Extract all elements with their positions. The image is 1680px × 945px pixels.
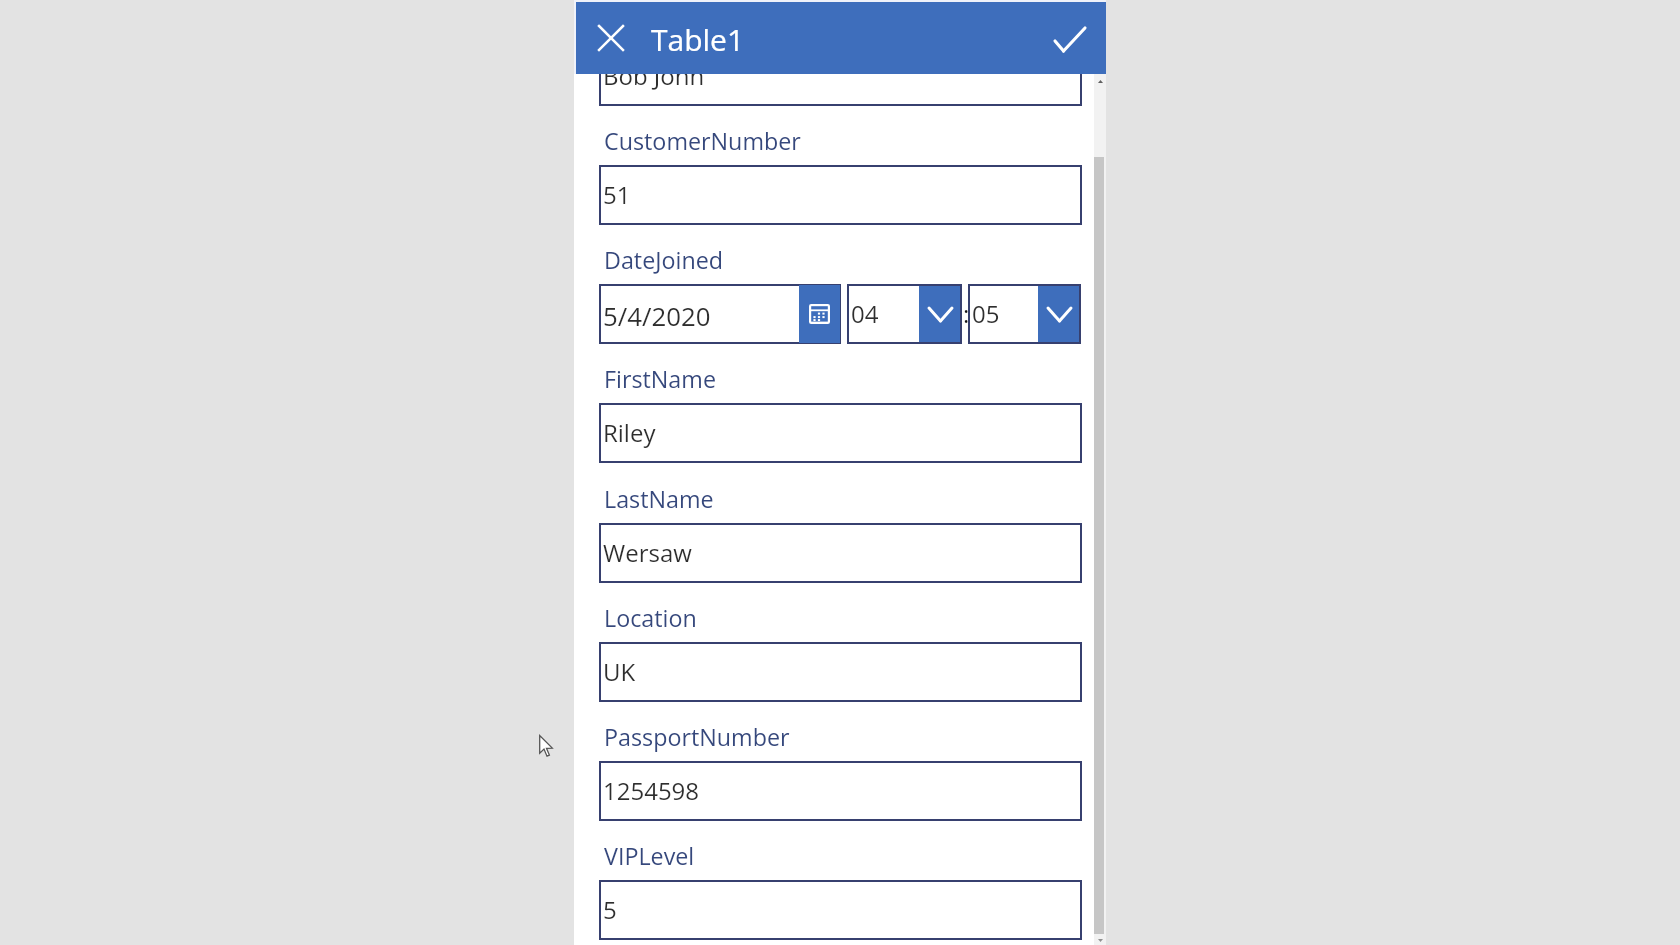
staticText: LastName xyxy=(604,483,714,515)
staticText: PassportNumber xyxy=(604,721,790,753)
staticText: CustomerNumber xyxy=(604,125,801,157)
staticText: 5 xyxy=(603,893,617,926)
staticText: 5/4/2020 xyxy=(603,298,711,333)
button[interactable]: 5 xyxy=(599,880,1082,940)
button[interactable]: Pick date xyxy=(799,285,840,343)
staticText: Bob John xyxy=(603,59,705,92)
button[interactable]: 5/4/2020 xyxy=(599,284,841,344)
staticText: 1254598 xyxy=(603,774,700,807)
button[interactable]: Close xyxy=(587,14,635,62)
button[interactable]: Bob John xyxy=(599,46,1082,106)
button[interactable]: 1254598 xyxy=(599,761,1082,821)
staticText: VIPLevel xyxy=(604,840,695,872)
staticText: FirstName xyxy=(604,363,716,395)
button[interactable]: 51 xyxy=(599,165,1082,225)
button[interactable]: Save xyxy=(1045,15,1094,63)
staticText: 04 xyxy=(851,297,879,330)
staticText: : xyxy=(963,297,970,330)
button[interactable]: UK xyxy=(599,642,1082,702)
staticText: 05 xyxy=(972,297,1000,330)
staticText: UK xyxy=(603,655,636,688)
button[interactable]: Minutes xyxy=(968,284,1081,344)
staticText: DateJoined xyxy=(604,244,724,276)
staticText: Wersaw xyxy=(603,536,692,569)
staticText: Riley xyxy=(603,416,656,449)
button[interactable]: Hours xyxy=(847,284,962,344)
staticText: Table1 xyxy=(651,19,745,53)
staticText: 51 xyxy=(603,178,631,211)
staticText: Location xyxy=(604,602,697,634)
button[interactable]: Riley xyxy=(599,403,1082,463)
button[interactable]: Wersaw xyxy=(599,523,1082,583)
